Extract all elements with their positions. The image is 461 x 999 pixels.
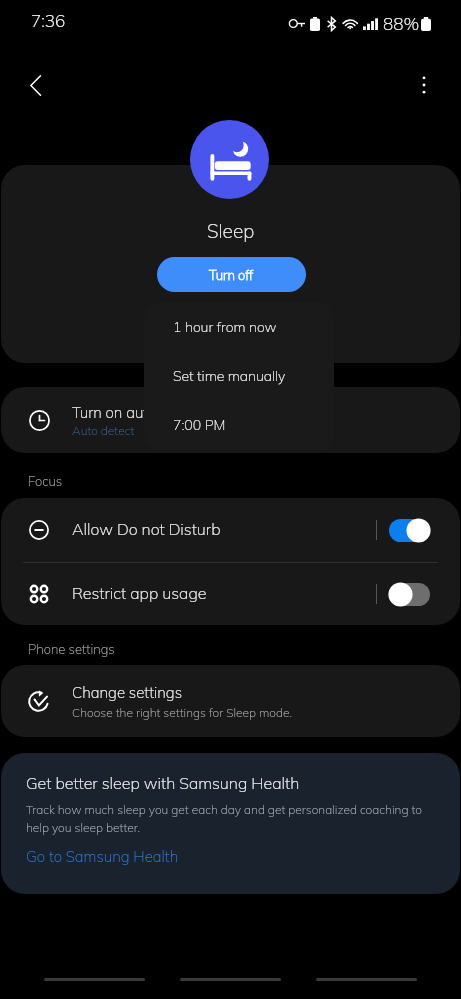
button[interactable]: Allow Do not Disturb on: [389, 519, 430, 542]
staticText: Set time manually: [173, 367, 286, 385]
staticText: Change settings: [72, 683, 183, 702]
staticText: Get better sleep with Samsung Health: [26, 773, 300, 793]
button[interactable]: Sleep mode: [190, 120, 269, 199]
staticText: Go to Samsung Health: [26, 847, 179, 866]
staticText: 88%: [383, 13, 420, 34]
staticText: Focus: [28, 473, 63, 489]
button[interactable]: 7:00 PM: [144, 400, 334, 449]
staticText: Choose the right settings for Sleep mode…: [72, 705, 292, 720]
staticText: Restrict app usage: [72, 583, 376, 603]
staticText: Phone settings: [28, 641, 115, 657]
staticText: Turn off: [209, 267, 254, 283]
button[interactable]: Change settings: [1, 665, 460, 737]
button[interactable]: Restrict app usage: [1, 563, 460, 625]
staticText: Turn on automatically: [72, 403, 217, 422]
button[interactable]: Set time manually: [144, 351, 334, 400]
staticText: 7:36: [31, 10, 66, 31]
button[interactable]: Allow Do not Disturb: [1, 498, 460, 562]
button[interactable]: 1 hour from now: [144, 302, 334, 351]
button[interactable]: Turn on automatically: [1, 387, 460, 453]
staticText: 1 hour from now: [173, 318, 277, 336]
staticText: Track how much sleep you get each day an…: [26, 802, 430, 835]
button[interactable]: Go to Samsung Health: [26, 847, 179, 866]
button[interactable]: Navigate up: [13, 63, 57, 107]
staticText: Allow Do not Disturb: [72, 519, 376, 539]
staticText: 7:00 PM: [173, 416, 226, 434]
staticText: Auto detect: [72, 423, 135, 438]
button[interactable]: More options: [402, 63, 446, 107]
staticText: Sleep: [207, 219, 255, 243]
button[interactable]: Turn off: [157, 257, 306, 292]
button[interactable]: Restrict app usage off: [389, 583, 430, 606]
